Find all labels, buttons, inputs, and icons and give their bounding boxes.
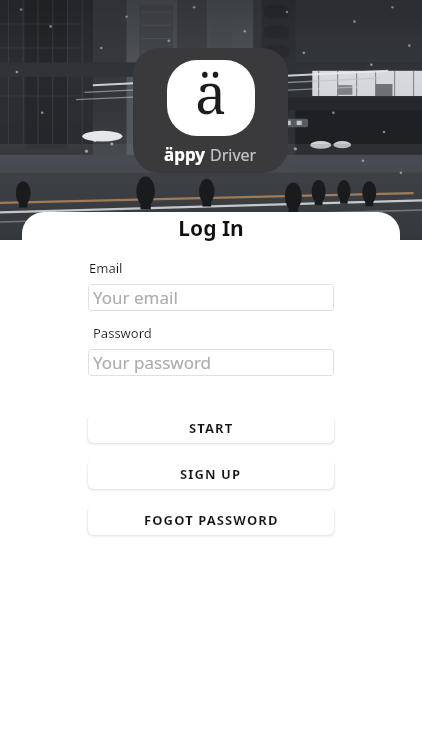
staticText: Your password — [93, 351, 212, 374]
staticText: Driver — [210, 144, 257, 166]
button[interactable]: SIGN UP — [88, 459, 334, 489]
staticText: Password — [93, 324, 152, 342]
button[interactable]: START — [88, 413, 334, 443]
button[interactable]: Your email — [88, 284, 334, 311]
staticText: Log In — [0, 214, 422, 243]
staticText: START — [189, 419, 234, 437]
staticText: Email — [89, 259, 123, 277]
button[interactable]: FOGOT PASSWORD — [88, 505, 334, 535]
staticText: Your email — [93, 286, 178, 309]
staticText: FOGOT PASSWORD — [144, 511, 279, 529]
staticText: äppy — [164, 143, 206, 166]
staticText: SIGN UP — [180, 465, 242, 483]
button[interactable]: Your password — [88, 349, 334, 376]
staticText: ä — [195, 60, 227, 130]
